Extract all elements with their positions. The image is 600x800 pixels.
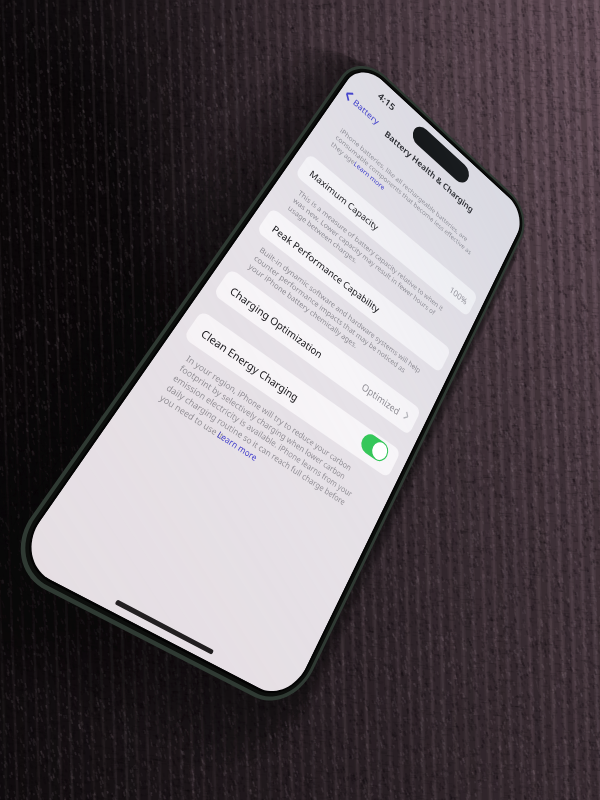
button[interactable]: iPhone showing Battery Health and Chargi… — [0, 0, 600, 800]
